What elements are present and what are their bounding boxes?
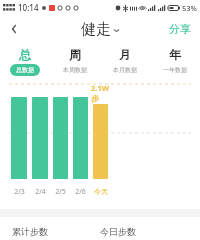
staticText: 10:14 <box>18 2 39 13</box>
staticText: 一年数据 <box>163 66 187 74</box>
staticText: 年 <box>169 47 181 62</box>
button[interactable]: 年 <box>150 43 200 79</box>
button[interactable]: 周 <box>50 43 100 79</box>
staticText: 总数据 <box>16 66 34 74</box>
staticText: 2/4 <box>35 187 46 197</box>
staticText: 月 <box>119 47 131 62</box>
staticText: 累计步数 <box>12 226 48 237</box>
staticText: 2/5 <box>55 187 66 197</box>
staticText: 健走 <box>81 20 111 39</box>
staticText: 53% <box>182 3 197 13</box>
staticText: 本周数据 <box>63 66 87 74</box>
staticText: 2/6 <box>75 187 86 197</box>
button[interactable]: 健走 <box>81 20 120 39</box>
staticText: 今天 <box>94 187 108 196</box>
button[interactable]: 月 <box>100 43 150 79</box>
staticText: 今日步数 <box>100 226 136 237</box>
staticText: 周 <box>69 47 81 62</box>
button[interactable]: 分享 <box>160 16 200 42</box>
button[interactable]: 总 <box>0 43 50 79</box>
staticText: 分享 <box>169 22 191 36</box>
button[interactable]: Back <box>0 15 28 43</box>
staticText: 本月数据 <box>113 66 137 74</box>
staticText: 2.1W步 <box>91 83 110 103</box>
staticText: 2/3 <box>14 187 25 197</box>
staticText: 总 <box>19 47 31 62</box>
